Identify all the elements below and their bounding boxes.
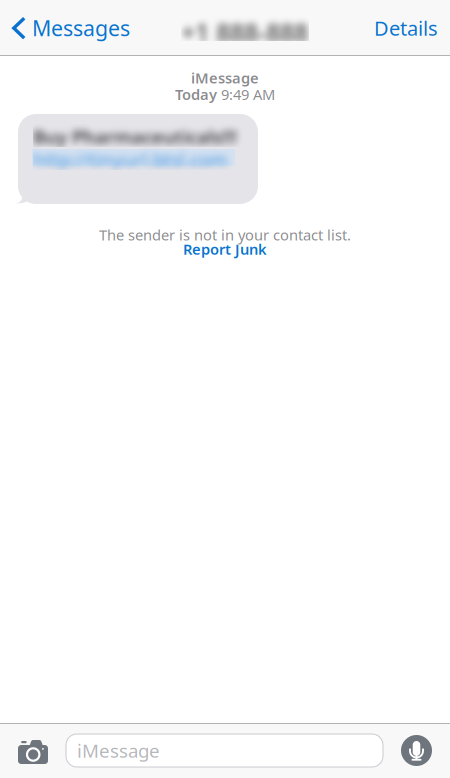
button[interactable]: Report Junk	[183, 244, 267, 259]
button[interactable]: Take photo or video	[0, 723, 66, 778]
staticText: iMessage	[77, 738, 160, 763]
button[interactable]: Record audio message	[383, 723, 450, 778]
staticText: The sender is not in your contact list.	[99, 225, 351, 244]
staticText: Today	[175, 84, 217, 104]
button[interactable]: Messages	[0, 0, 138, 55]
staticText: iMessage	[191, 68, 259, 87]
button[interactable]: Details	[366, 0, 450, 55]
staticText: Details	[374, 15, 438, 41]
staticText: Messages	[32, 14, 130, 42]
staticText: 9:49 AM	[221, 84, 275, 104]
staticText: Report Junk	[183, 239, 267, 259]
